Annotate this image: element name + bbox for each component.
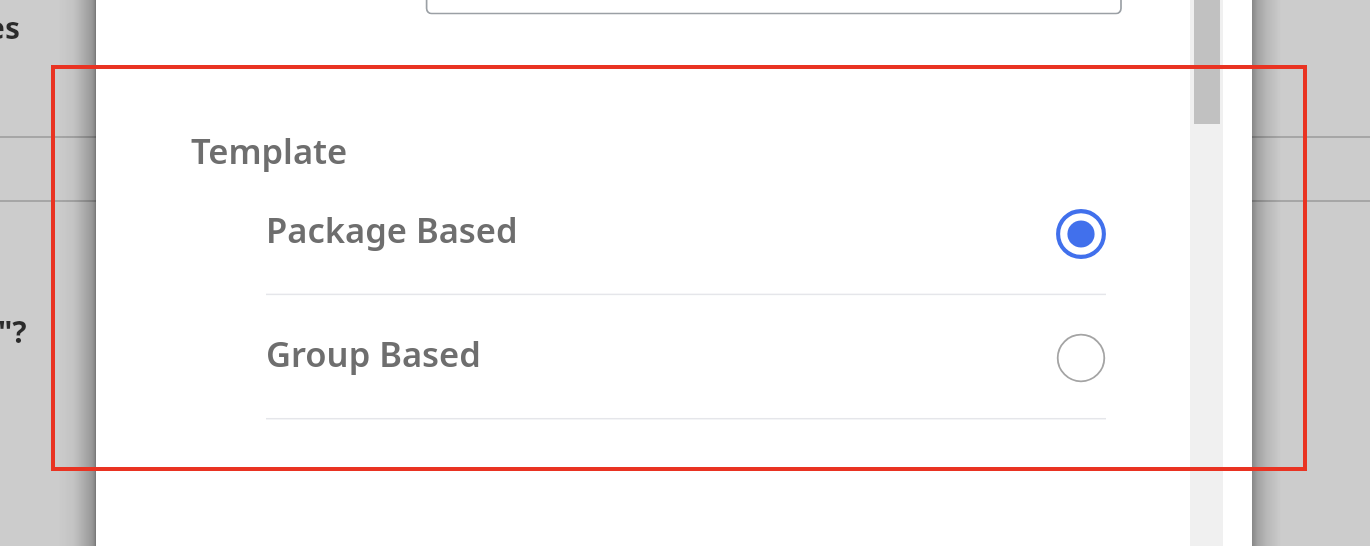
staticText: Template — [191, 127, 348, 174]
button[interactable]: Group Based — [266, 310, 1106, 406]
staticText: "? — [0, 311, 27, 352]
button[interactable]: Scroll — [1194, 0, 1220, 124]
button[interactable]: Package Based — [266, 186, 1106, 282]
staticText: Group Based — [266, 330, 481, 377]
button[interactable] — [420, 0, 1127, 20]
staticText: es — [0, 7, 20, 48]
staticText: Package Based — [266, 206, 518, 253]
